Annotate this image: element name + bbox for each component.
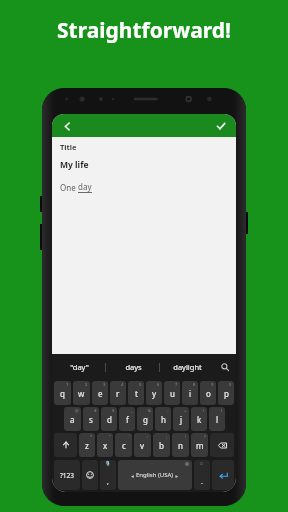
button[interactable]: x (97, 433, 113, 457)
staticText: Title (60, 142, 77, 152)
staticText: 6 (157, 382, 160, 387)
staticText: q (60, 388, 65, 399)
staticText: * (90, 434, 93, 439)
staticText: r (116, 388, 120, 399)
button[interactable]: Enter (212, 460, 234, 490)
staticText: t (135, 388, 138, 399)
button[interactable]: b (153, 433, 170, 457)
button[interactable]: g (137, 407, 153, 431)
button[interactable]: n (172, 433, 189, 457)
staticText: - (167, 408, 169, 413)
staticText: ; (166, 434, 168, 439)
button[interactable]: daylight (160, 354, 214, 380)
staticText: e (98, 388, 103, 399)
button[interactable]: p (218, 381, 234, 405)
button[interactable]: d (101, 407, 117, 431)
staticText: u (170, 388, 175, 399)
staticText: k (197, 414, 202, 425)
staticText: 8 (193, 382, 196, 387)
button[interactable]: Save (213, 118, 229, 134)
staticText: "day" (70, 362, 89, 372)
staticText: v (140, 440, 145, 451)
staticText: & (148, 408, 151, 413)
staticText: $ (112, 408, 115, 413)
button[interactable]: v (134, 433, 151, 457)
button[interactable]: y (146, 381, 162, 405)
staticText: , (107, 477, 109, 487)
button[interactable]: "day" (52, 354, 106, 380)
staticText: 4 (121, 382, 124, 387)
button[interactable]: i (182, 381, 198, 405)
staticText: j (180, 414, 183, 425)
staticText: ▸ (174, 472, 179, 479)
button[interactable]: ◂ (118, 460, 192, 490)
staticText: Straightforward! (57, 16, 231, 45)
staticText: 9 (211, 382, 214, 387)
staticText: p (224, 388, 229, 399)
staticText: _ (131, 408, 133, 413)
staticText: y (152, 388, 157, 399)
button[interactable]: k (191, 407, 207, 431)
button[interactable]: u (164, 381, 180, 405)
staticText: 3 (103, 382, 106, 387)
staticText: s (89, 414, 93, 425)
staticText: # (94, 408, 97, 413)
staticText: m (196, 440, 204, 451)
staticText: ◂ (131, 472, 136, 479)
staticText: : (147, 434, 149, 439)
staticText: . (201, 477, 203, 487)
staticText: English (USA) (136, 471, 174, 479)
staticText: 0 (229, 382, 232, 387)
staticText: c (122, 440, 126, 451)
button[interactable]: Emoji (82, 460, 98, 490)
button[interactable]: c (115, 433, 132, 457)
staticText: f (126, 414, 129, 425)
staticText: 2 (85, 382, 88, 387)
staticText: 5 (139, 382, 142, 387)
button[interactable]: r (110, 381, 126, 405)
staticText: My life (60, 159, 89, 171)
staticText: ▫ (200, 461, 204, 466)
button[interactable]: f (119, 407, 135, 431)
button[interactable]: z (79, 433, 95, 457)
staticText: h (161, 414, 166, 425)
staticText: o (206, 388, 211, 399)
staticText: x (103, 440, 108, 451)
button[interactable]: s (83, 407, 99, 431)
button[interactable]: h (155, 407, 171, 431)
button[interactable]: l (209, 407, 225, 431)
staticText: 🎙 (105, 461, 111, 466)
button[interactable]: e (92, 381, 108, 405)
staticText: daylight (173, 362, 202, 372)
staticText: b (159, 440, 164, 451)
button[interactable]: t (128, 381, 144, 405)
button[interactable]: . (194, 460, 210, 490)
staticText: day (78, 181, 92, 192)
staticText: n (178, 440, 183, 451)
button[interactable]: o (200, 381, 216, 405)
staticText: days (125, 362, 142, 372)
staticText: ! (185, 434, 187, 439)
button[interactable]: Back (59, 118, 75, 134)
button[interactable]: a (64, 407, 81, 431)
button[interactable]: m (191, 433, 208, 457)
staticText: 1 (66, 382, 69, 387)
button[interactable]: days (106, 354, 160, 380)
button[interactable]: Search (214, 354, 236, 380)
button[interactable]: j (173, 407, 189, 431)
staticText: " (109, 434, 111, 439)
staticText: 7 (175, 382, 178, 387)
staticText: One (60, 182, 78, 193)
staticText: d (107, 414, 112, 425)
staticText: ) (221, 408, 223, 413)
button[interactable]: ?123 (54, 460, 80, 490)
button[interactable]: q (54, 381, 71, 405)
button[interactable]: Shift (54, 433, 77, 457)
button[interactable]: w (73, 381, 90, 405)
button[interactable]: , (100, 460, 116, 490)
staticText: ?123 (60, 471, 74, 480)
staticText: l (216, 414, 219, 425)
button[interactable]: Backspace (210, 433, 234, 457)
staticText: z (85, 440, 89, 451)
staticText: g (143, 414, 148, 425)
